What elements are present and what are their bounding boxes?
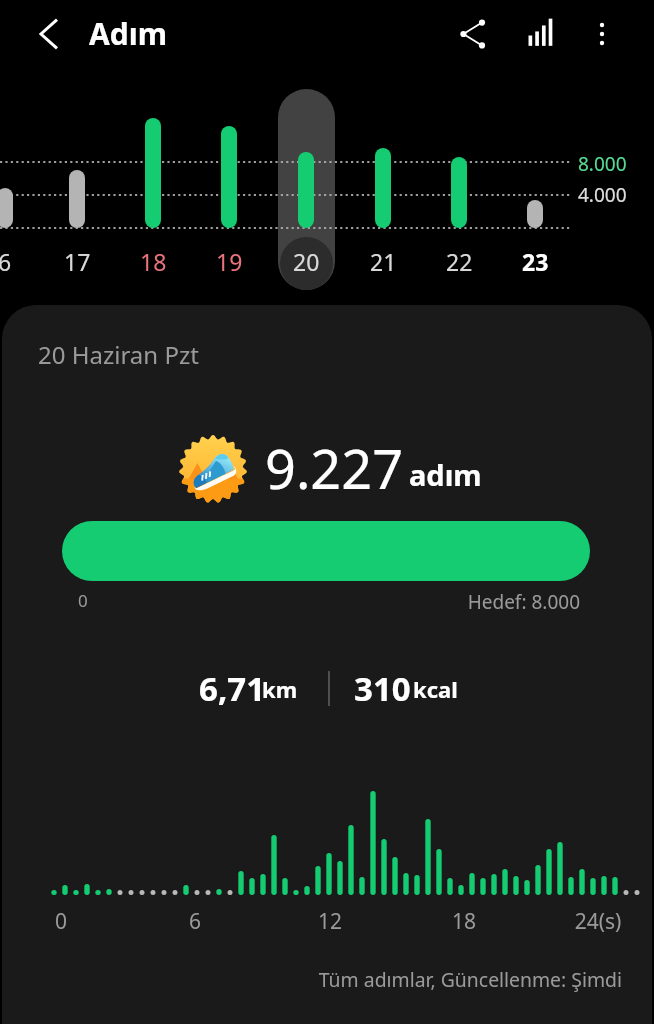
button[interactable]: 18 <box>123 246 183 276</box>
staticText: 23 <box>522 246 549 276</box>
staticText: 8.000 <box>578 151 627 177</box>
staticText: 21 <box>370 246 397 276</box>
staticText: 0 <box>78 589 88 612</box>
staticText: Tüm adımlar, Güncellenme: Şimdi <box>302 966 622 992</box>
button[interactable]: 19 <box>199 246 259 276</box>
button[interactable]: 17 <box>47 246 107 276</box>
button[interactable]: 21 <box>353 246 413 276</box>
button[interactable]: 22 <box>429 246 489 276</box>
staticText: 22 <box>446 246 473 276</box>
staticText: 17 <box>64 246 91 276</box>
button[interactable]: 20 <box>276 246 336 276</box>
button[interactable] <box>62 521 590 581</box>
staticText: kcal <box>413 674 458 704</box>
staticText: 18 <box>140 246 167 276</box>
staticText: 310 <box>354 666 411 711</box>
staticText: 12 <box>300 907 360 936</box>
staticText: 20 Haziran Pzt <box>38 338 199 371</box>
button[interactable]: 23 <box>505 246 565 276</box>
staticText: Adım <box>89 13 167 54</box>
staticText: km <box>262 674 298 704</box>
staticText: 6 <box>165 907 225 936</box>
staticText: 9.227 <box>265 431 404 505</box>
button[interactable]: Share <box>447 8 499 60</box>
button[interactable]: 6 <box>0 246 35 276</box>
staticText: 18 <box>434 907 494 936</box>
staticText: 24(s) <box>568 907 628 936</box>
staticText: 20 <box>293 246 320 276</box>
staticText: 0 <box>31 907 91 936</box>
staticText: 19 <box>216 246 243 276</box>
button[interactable]: Statistics <box>515 8 567 60</box>
button[interactable]: More options <box>576 8 628 60</box>
staticText: Hedef: 8.000 <box>292 589 580 615</box>
staticText: adım <box>409 455 482 494</box>
staticText: 4.000 <box>578 182 627 208</box>
staticText: 6,71 <box>199 666 266 711</box>
button[interactable]: Back <box>25 10 73 58</box>
staticText: 6 <box>0 246 12 276</box>
